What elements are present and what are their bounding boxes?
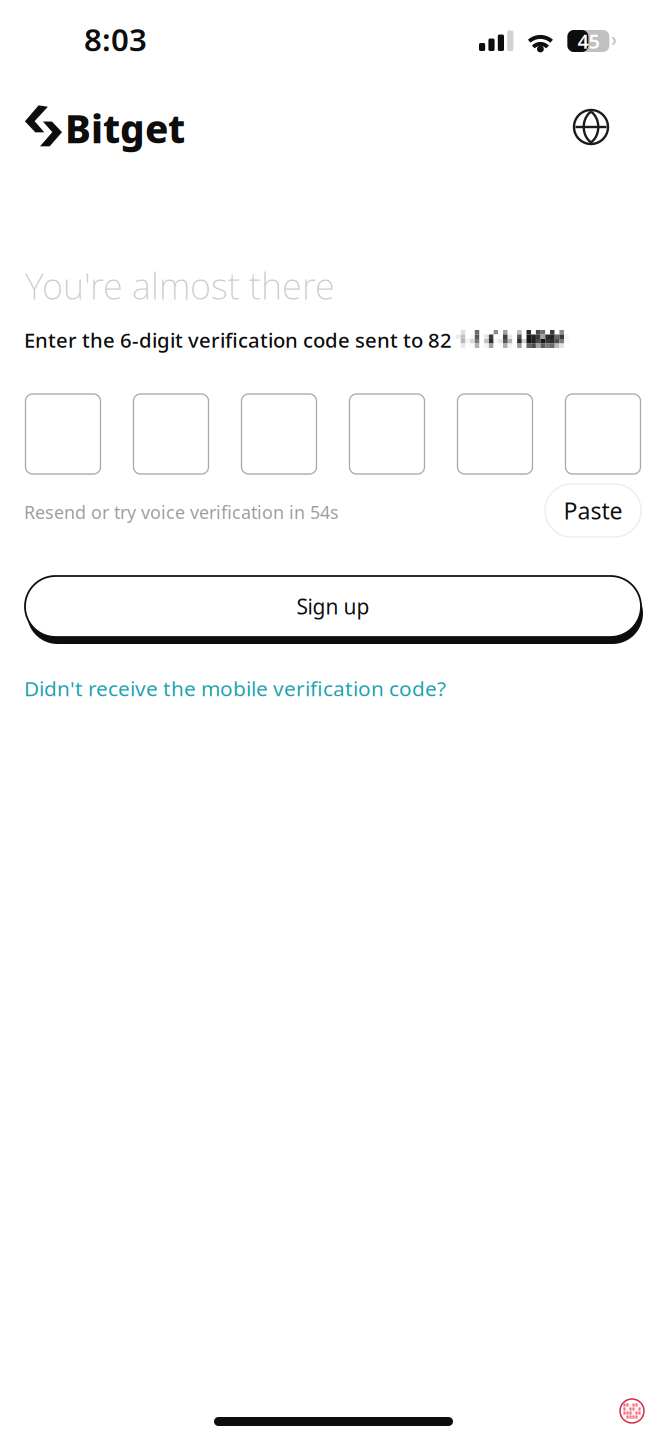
staticText: Didn't receive the mobile verification c… [24,674,446,702]
staticText: Paste [563,495,622,526]
staticText: 8:03 [84,18,147,60]
staticText: You're almost there [25,261,335,310]
staticText: Enter the 6-digit verification code sent… [24,326,452,354]
staticText: Resend or try voice verification in 54s [24,500,339,524]
button[interactable]: Paste [545,484,641,537]
button[interactable]: Language [565,101,617,153]
staticText: Bitget [65,102,185,155]
staticText: 45 [577,27,599,55]
button[interactable]: Didn't receive the mobile verification c… [24,674,446,702]
button[interactable]: Sign up [25,576,643,644]
button[interactable]: Bitget [25,100,186,153]
staticText: Sign up [296,592,369,621]
